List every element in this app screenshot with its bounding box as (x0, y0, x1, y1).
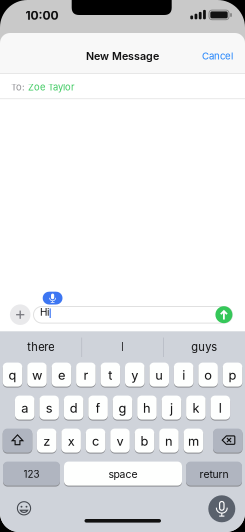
button[interactable] (213, 429, 242, 454)
button[interactable] (215, 306, 232, 323)
button[interactable]: k (186, 396, 206, 421)
button[interactable]: i (174, 363, 193, 388)
staticText: j (170, 400, 173, 416)
button[interactable]: a (15, 396, 35, 421)
staticText: e (58, 367, 65, 383)
button[interactable]: I (121, 340, 124, 354)
button[interactable]: guys (191, 340, 217, 354)
button[interactable]: d (64, 396, 83, 421)
button[interactable]: o (198, 363, 218, 388)
button[interactable]: s (39, 396, 59, 421)
staticText: v (116, 433, 123, 449)
button[interactable] (33, 306, 233, 324)
staticText: there (27, 340, 54, 354)
staticText: i (182, 367, 185, 383)
button[interactable]: c (86, 429, 105, 454)
staticText: a (21, 400, 28, 416)
staticText: return (199, 468, 228, 480)
button[interactable]: e (52, 363, 71, 388)
button[interactable]: l (210, 396, 230, 421)
button[interactable] (208, 495, 235, 522)
staticText: d (70, 400, 78, 416)
button[interactable]: f (88, 396, 108, 421)
staticText: To: (11, 82, 25, 93)
staticText: s (46, 400, 53, 416)
staticText: m (188, 433, 199, 449)
staticText: 123 (23, 468, 39, 480)
staticText: z (43, 433, 50, 449)
button[interactable]: w (27, 363, 47, 388)
button[interactable]: 123 (3, 462, 60, 487)
staticText: y (131, 367, 138, 383)
button[interactable]: space (64, 462, 182, 487)
button[interactable] (16, 501, 31, 516)
staticText: I (121, 340, 124, 354)
staticText: t (108, 367, 112, 383)
staticText: h (143, 400, 151, 416)
button[interactable]: z (37, 429, 56, 454)
staticText: r (83, 367, 88, 383)
button[interactable]: u (149, 363, 169, 388)
staticText: f (96, 400, 101, 416)
button[interactable]: g (113, 396, 132, 421)
button[interactable]: r (76, 363, 96, 388)
button[interactable]: x (61, 429, 81, 454)
button[interactable]: m (184, 429, 203, 454)
staticText: g (118, 400, 126, 416)
button[interactable]: t (100, 363, 120, 388)
staticText: Cancel (202, 50, 233, 62)
staticText: u (155, 367, 163, 383)
staticText: guys (191, 340, 217, 354)
staticText: p (229, 367, 237, 383)
button[interactable]: j (162, 396, 181, 421)
button[interactable]: Cancel (190, 50, 233, 62)
staticText: Hi (40, 306, 49, 318)
button[interactable]: n (159, 429, 179, 454)
button[interactable]: v (110, 429, 130, 454)
staticText: c (92, 433, 99, 449)
staticText: space (108, 468, 137, 480)
staticText: b (140, 433, 148, 449)
button[interactable] (3, 429, 32, 454)
button[interactable]: q (3, 363, 22, 388)
button[interactable]: h (137, 396, 157, 421)
staticText: l (219, 400, 222, 416)
button[interactable]: p (223, 363, 242, 388)
staticText: w (32, 367, 42, 383)
staticText: x (68, 433, 75, 449)
staticText: o (204, 367, 212, 383)
button[interactable]: To: (11, 82, 171, 93)
staticText: Zoe Taylor (28, 82, 75, 93)
staticText: k (192, 400, 199, 416)
button[interactable] (10, 304, 30, 325)
button[interactable]: y (125, 363, 145, 388)
staticText: New Message (86, 49, 159, 62)
staticText: 10:00 (25, 8, 58, 23)
staticText: n (165, 433, 173, 449)
staticText: q (8, 367, 16, 383)
button[interactable]: b (135, 429, 154, 454)
button[interactable]: there (27, 340, 54, 354)
button[interactable]: return (186, 462, 242, 487)
